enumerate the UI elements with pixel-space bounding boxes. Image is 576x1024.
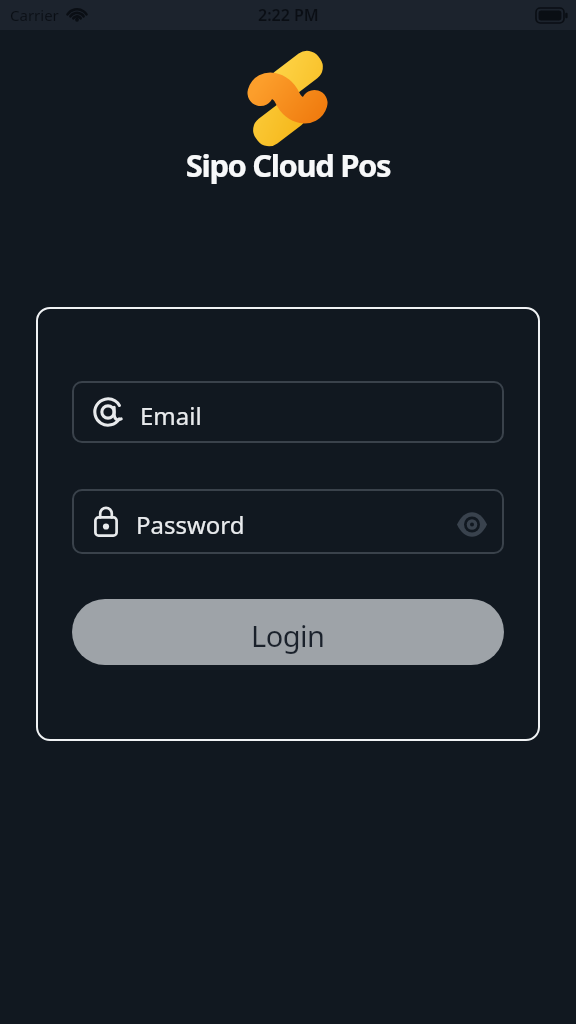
staticText: Carrier: [10, 5, 59, 25]
staticText: Login: [251, 616, 325, 655]
staticText: Email: [140, 399, 202, 432]
staticText: 2:22 PM: [258, 4, 319, 26]
button[interactable]: Login: [72, 599, 504, 665]
staticText: Sipo Cloud Pos: [0, 144, 576, 186]
button[interactable]: Email: [72, 381, 504, 443]
button[interactable]: Password: [72, 489, 504, 554]
staticText: Password: [136, 508, 245, 541]
